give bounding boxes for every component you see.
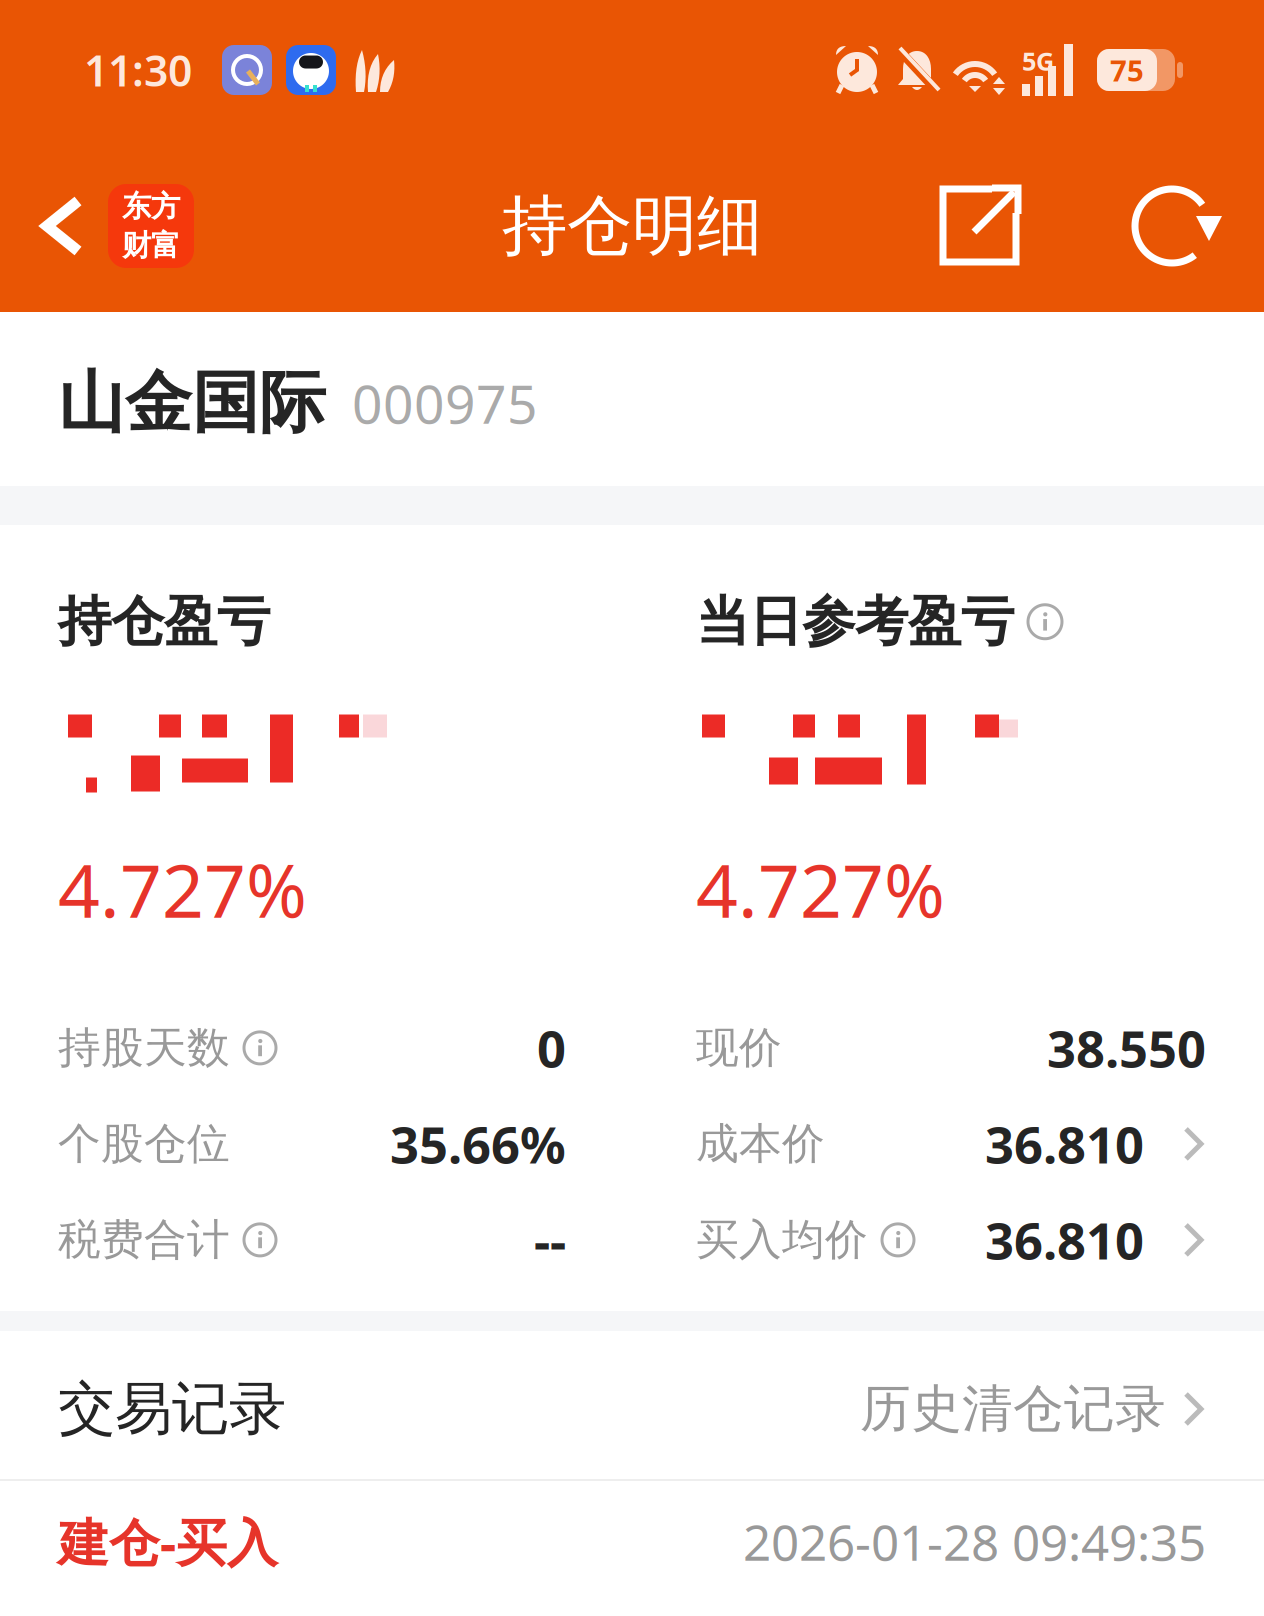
staticText: 交易记录 (58, 1374, 286, 1444)
staticText: -- (534, 1206, 566, 1273)
staticText: 历史清仓记录 (860, 1378, 1166, 1440)
staticText: 5G (1022, 44, 1054, 78)
staticText: 成本价 (696, 1118, 825, 1170)
staticText: 0 (537, 1014, 566, 1081)
button[interactable]: 说明 (244, 1224, 276, 1256)
staticText: 山金国际 (58, 362, 326, 444)
staticText: 000975 (352, 368, 538, 438)
staticText: 35.66% (390, 1110, 566, 1177)
button[interactable]: 东方财富 (108, 184, 194, 268)
button[interactable]: 成本价 (696, 1110, 1206, 1177)
staticText: 持股天数 (58, 1022, 230, 1074)
staticText: 36.810 (985, 1206, 1144, 1273)
button[interactable]: 买入均价 (696, 1206, 1206, 1273)
button[interactable]: 说明 (882, 1224, 914, 1256)
staticText: 4.727% (58, 840, 307, 938)
staticText: 个股仓位 (58, 1118, 230, 1170)
staticText: 财富 (122, 227, 180, 263)
staticText: 11:30 (84, 42, 192, 98)
staticText: 38.550 (1047, 1014, 1206, 1081)
button[interactable]: Share (940, 186, 1020, 266)
button[interactable]: 说明 (244, 1032, 276, 1064)
staticText: 建仓-买入 (58, 1508, 278, 1575)
staticText: 现价 (696, 1022, 782, 1074)
staticText: 4.727% (696, 840, 945, 938)
staticText: 东方 (122, 188, 180, 224)
staticText: 买入均价 (696, 1214, 868, 1266)
button[interactable]: 历史清仓记录 (860, 1378, 1206, 1440)
staticText: 税费合计 (58, 1214, 230, 1266)
button[interactable]: Refresh (1132, 182, 1224, 270)
staticText: 75 (1110, 50, 1144, 89)
staticText: 持仓盈亏 (58, 589, 270, 654)
staticText: 2026-01-28 09:49:35 (743, 1509, 1206, 1574)
staticText: 当日参考盈亏 (696, 589, 1014, 654)
staticText: 36.810 (985, 1110, 1144, 1177)
button[interactable]: 建仓-买入 (0, 1481, 1264, 1616)
button[interactable]: Back (38, 196, 88, 256)
button[interactable]: 说明 (1028, 605, 1062, 639)
staticText: 持仓明细 (502, 186, 762, 266)
